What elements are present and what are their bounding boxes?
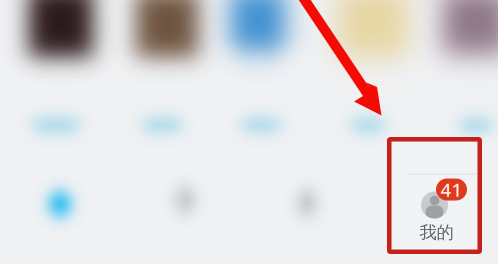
staticText: 41 [440,177,462,202]
button[interactable]: 41 [391,141,477,249]
staticText: 我的 [419,222,453,243]
